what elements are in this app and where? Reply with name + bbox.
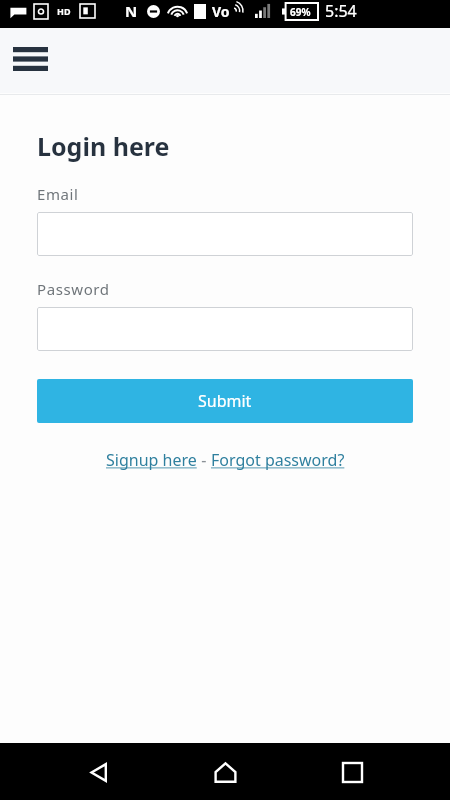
button[interactable]: Open navigation menu [13,44,55,74]
button[interactable] [37,212,413,256]
staticText: Forgot password? [211,449,345,471]
staticText: HD [57,5,71,17]
staticText: N [125,1,138,21]
staticText: 5:54 [325,0,357,22]
staticText: Email [37,184,79,204]
button[interactable]: Recent apps [324,744,380,800]
button[interactable]: Back [71,744,127,800]
staticText: Vo [212,2,230,21]
button[interactable]: Forgot password? [211,449,345,471]
button[interactable]: Signup here [106,449,197,471]
button[interactable] [37,307,413,351]
staticText: Login here [37,129,170,163]
button[interactable]: Home [197,744,253,800]
staticText: 69% [290,5,311,19]
button[interactable]: Submit [37,379,413,423]
staticText: Password [37,279,110,299]
staticText: - [197,449,211,471]
staticText: Signup here [106,449,197,471]
staticText: Submit [198,390,252,412]
